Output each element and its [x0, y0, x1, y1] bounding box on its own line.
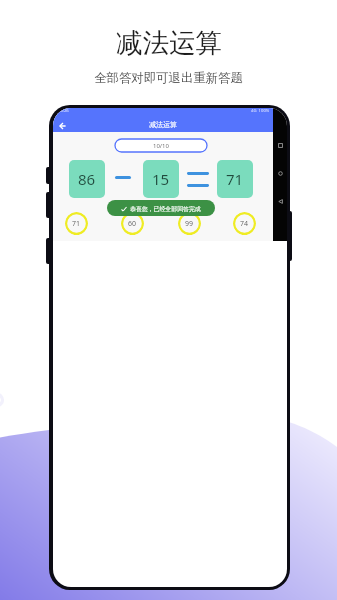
- staticText: 74: [240, 219, 249, 229]
- staticText: 71: [72, 219, 81, 229]
- button[interactable]: 10/10: [115, 139, 207, 152]
- button[interactable]: 99: [178, 212, 201, 235]
- staticText: 15: [152, 169, 170, 189]
- staticText: 4G 100%: [251, 108, 270, 114]
- button[interactable]: Back: [54, 121, 70, 131]
- staticText: 99: [185, 219, 194, 229]
- staticText: 全部答对即可退出重新答题: [94, 70, 243, 86]
- button[interactable]: 86: [69, 160, 105, 198]
- staticText: 60: [128, 219, 137, 229]
- staticText: 10:26: [58, 108, 69, 114]
- button[interactable]: 15: [143, 160, 179, 198]
- button[interactable]: 60: [121, 212, 144, 235]
- staticText: 10/10: [153, 142, 169, 150]
- button[interactable]: 71: [65, 212, 88, 235]
- staticText: 减法运算: [149, 120, 177, 129]
- button[interactable]: Recents: [278, 143, 283, 148]
- button[interactable]: Back: [278, 199, 283, 204]
- staticText: 86: [78, 169, 96, 189]
- staticText: 减法运算: [116, 26, 222, 59]
- button[interactable]: Home: [278, 171, 283, 176]
- staticText: 恭喜您，已经全部回答完成: [130, 205, 201, 212]
- button[interactable]: 74: [233, 212, 256, 235]
- staticText: 71: [226, 169, 244, 189]
- button[interactable]: 71: [217, 160, 253, 198]
